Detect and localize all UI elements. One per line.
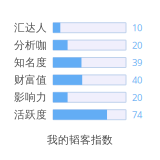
button[interactable]: 活跃度 — [14, 106, 160, 123]
staticText: 20 — [132, 91, 142, 103]
staticText: 74 — [132, 108, 142, 121]
staticText: 40 — [132, 74, 142, 86]
button[interactable]: 知名度 — [14, 54, 160, 71]
button[interactable]: 汇达人 — [14, 19, 160, 36]
button[interactable]: 分析咖 — [14, 36, 160, 54]
staticText: 影响力 — [14, 91, 47, 104]
staticText: 财富值 — [14, 73, 47, 86]
button[interactable]: 影响力 — [14, 89, 160, 106]
staticText: 汇达人 — [14, 21, 47, 34]
staticText: 10 — [132, 21, 142, 34]
staticText: 活跃度 — [14, 108, 47, 121]
staticText: 知名度 — [14, 56, 47, 69]
staticText: 分析咖 — [14, 38, 47, 52]
staticText: 我的韬客指数 — [47, 133, 113, 146]
button[interactable]: 财富值 — [14, 71, 160, 89]
staticText: 39 — [132, 56, 142, 69]
staticText: 20 — [132, 39, 142, 51]
